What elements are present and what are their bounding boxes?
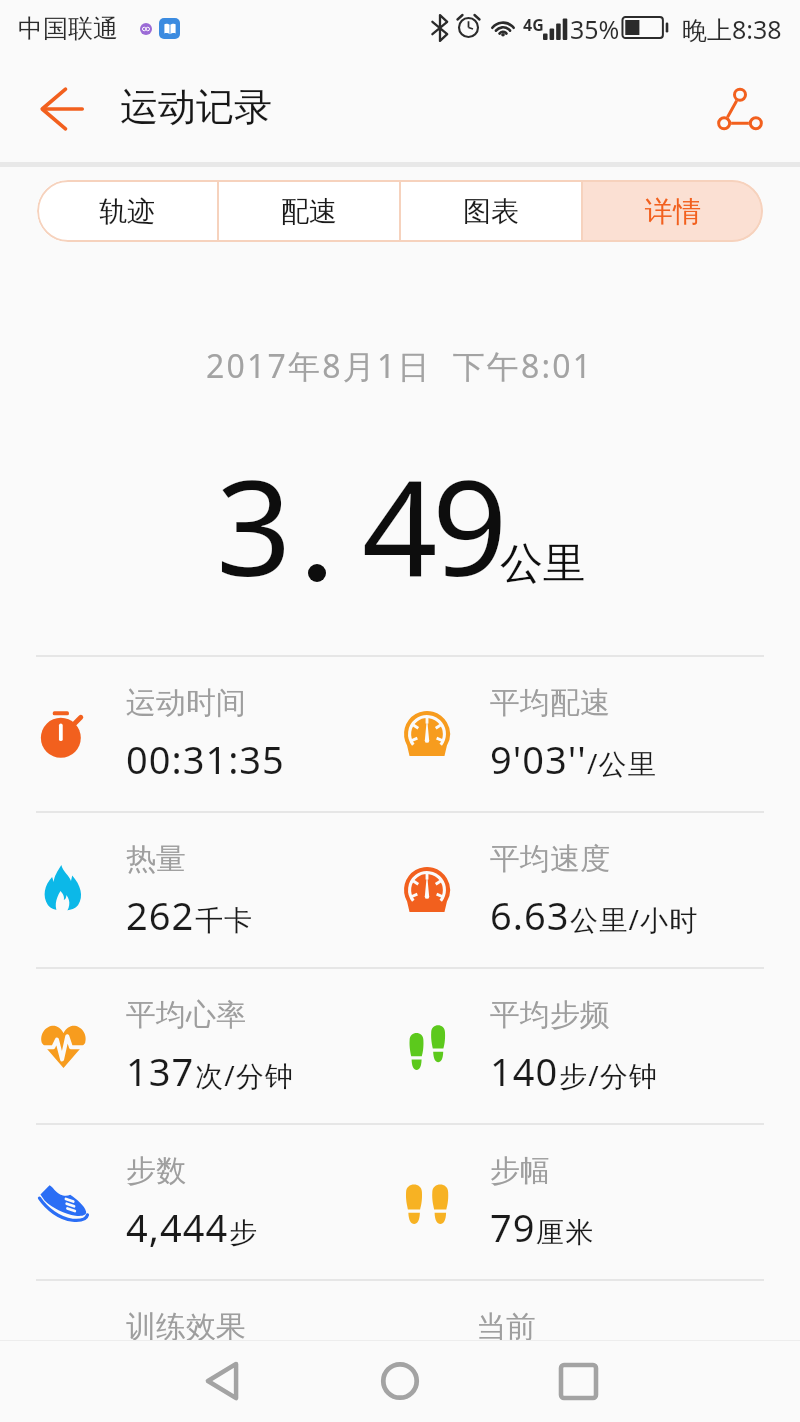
staticText: 262 [126, 889, 195, 941]
staticText: 公里/小时 [570, 900, 699, 938]
button[interactable]: Back [184, 1343, 260, 1419]
staticText: 平均步频 [490, 996, 610, 1034]
staticText: 运动时间 [126, 684, 246, 722]
staticText: 步幅 [490, 1152, 550, 1190]
staticText: 详情 [645, 194, 701, 229]
staticText: 9 [432, 435, 508, 615]
staticText: 2017年8月1日 下午8:01 [206, 344, 594, 388]
staticText: 次/分钟 [195, 1056, 295, 1094]
button[interactable]: 轨迹 [37, 180, 217, 242]
staticText: 轨迹 [99, 194, 155, 229]
staticText: 步/分钟 [559, 1056, 659, 1094]
staticText: 4 [362, 435, 438, 615]
staticText: 3 [216, 435, 292, 615]
staticText: 35% [570, 12, 620, 46]
button[interactable]: Recent apps [540, 1343, 616, 1419]
staticText: 当前 [476, 1308, 536, 1346]
staticText: 137 [126, 1045, 195, 1097]
staticText: 晚上8:38 [682, 12, 782, 46]
staticText: 步数 [126, 1152, 186, 1190]
button[interactable]: 步数 [0, 1125, 400, 1279]
staticText: 4G [523, 14, 544, 36]
staticText: 公里 [500, 537, 586, 591]
staticText: 平均心率 [126, 996, 246, 1034]
staticText: 9'03'' [490, 733, 587, 785]
button[interactable]: 图表 [401, 180, 581, 242]
staticText: 千卡 [195, 903, 254, 938]
staticText: 中国联通 [18, 13, 118, 44]
staticText: 训练效果 [126, 1308, 246, 1346]
staticText: 00:31:35 [126, 733, 285, 785]
staticText: 140 [490, 1045, 559, 1097]
staticText: 平均速度 [490, 840, 610, 878]
button[interactable]: 详情 [583, 180, 763, 242]
button[interactable]: 平均步频 [400, 969, 800, 1123]
button[interactable]: 平均速度 [400, 813, 800, 967]
button[interactable]: 配速 [219, 180, 399, 242]
button[interactable]: 平均心率 [0, 969, 400, 1123]
button[interactable]: Share [708, 77, 772, 141]
button[interactable]: Home [362, 1343, 438, 1419]
staticText: 4,444 [126, 1201, 229, 1253]
staticText: 6.63 [490, 889, 570, 941]
staticText: 配速 [281, 194, 337, 229]
staticText: 步 [229, 1215, 259, 1250]
staticText: 热量 [126, 840, 186, 878]
button[interactable]: Back [30, 77, 94, 141]
button[interactable]: 运动时间 [0, 657, 400, 811]
staticText: 厘米 [536, 1215, 595, 1250]
staticText: /公里 [587, 744, 658, 782]
staticText: 平均配速 [490, 684, 610, 722]
button[interactable]: 平均配速 [400, 657, 800, 811]
staticText: 运动记录 [120, 83, 272, 131]
button[interactable]: 热量 [0, 813, 400, 967]
staticText: 79 [490, 1201, 536, 1253]
button[interactable]: 步幅 [400, 1125, 800, 1279]
staticText: 图表 [463, 194, 519, 229]
